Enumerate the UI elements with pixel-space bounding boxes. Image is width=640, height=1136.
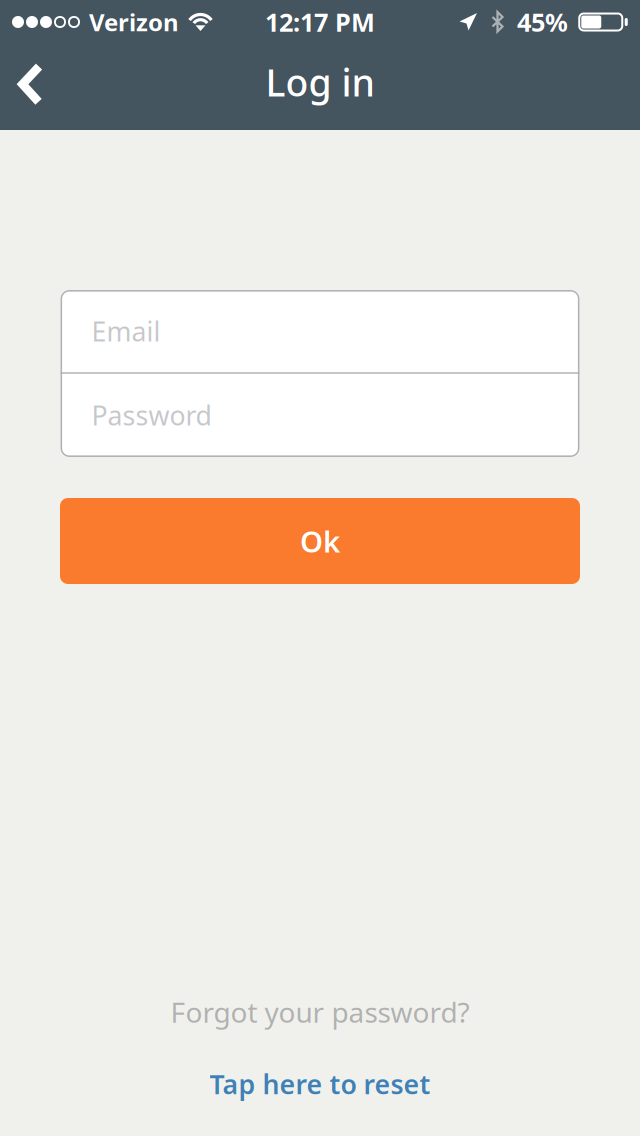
staticText: Email: [91, 313, 160, 349]
button[interactable]: Tap here to reset: [60, 1062, 580, 1106]
staticText: Forgot your password?: [170, 993, 469, 1031]
staticText: Verizon: [89, 6, 179, 38]
staticText: Log in: [265, 57, 374, 107]
staticText: Tap here to reset: [209, 1066, 430, 1102]
staticText: Password: [91, 397, 211, 433]
staticText: 45%: [517, 5, 568, 39]
staticText: Ok: [300, 521, 340, 560]
button[interactable]: Back: [0, 53, 60, 115]
staticText: 12:17 PM: [265, 5, 375, 39]
button[interactable]: Ok: [60, 498, 580, 584]
